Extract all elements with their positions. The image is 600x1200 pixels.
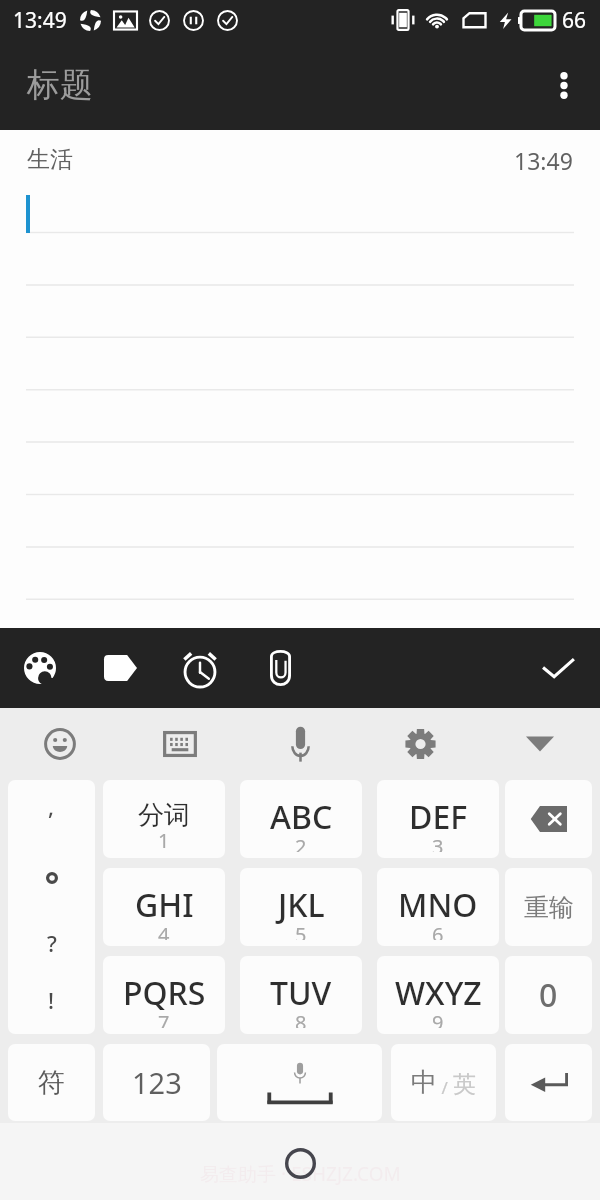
button[interactable]: Tag xyxy=(80,628,160,708)
staticText: ABC xyxy=(270,795,333,839)
button[interactable]: GHI xyxy=(103,868,225,946)
staticText: 符 xyxy=(38,1066,65,1100)
staticText: DEF xyxy=(409,795,468,839)
staticText: 分词 xyxy=(138,799,190,832)
button[interactable]: 0 xyxy=(505,956,592,1034)
button[interactable]: Enter xyxy=(505,1044,592,1121)
button[interactable]: Space xyxy=(217,1044,382,1121)
button[interactable]: 中/英 xyxy=(391,1044,496,1121)
staticText: PQRS xyxy=(123,971,206,1015)
staticText: 0 xyxy=(539,973,558,1017)
staticText: 生活 xyxy=(27,145,73,174)
button[interactable]: More options xyxy=(527,40,600,130)
staticText: 1 xyxy=(158,827,170,854)
staticText: JKL xyxy=(278,883,325,927)
staticText: MNO xyxy=(398,883,478,927)
staticText: 4 xyxy=(158,921,170,940)
button[interactable]: Keyboard layout xyxy=(120,708,240,780)
button[interactable]: Home xyxy=(276,1139,324,1187)
button[interactable]: Punctuation xyxy=(8,780,95,1034)
staticText: 9 xyxy=(432,1009,444,1028)
staticText: TUV xyxy=(270,971,332,1015)
button[interactable]: PQRS xyxy=(103,956,225,1034)
staticText: 英 xyxy=(453,1070,476,1099)
staticText: , xyxy=(48,791,55,821)
staticText: ! xyxy=(48,985,55,1015)
staticText: 8 xyxy=(295,1009,307,1028)
staticText: 6 xyxy=(432,921,444,940)
button[interactable]: 123 xyxy=(103,1044,210,1121)
button[interactable]: Color xyxy=(0,628,80,708)
staticText: ? xyxy=(47,928,57,958)
staticText: 7 xyxy=(158,1009,170,1028)
staticText: 5 xyxy=(295,921,307,940)
button[interactable]: Settings xyxy=(360,708,480,780)
staticText: 13:49 xyxy=(514,145,573,176)
staticText: GHI xyxy=(135,883,194,927)
button[interactable]: Voice input xyxy=(240,708,360,780)
staticText: / xyxy=(437,1076,453,1099)
staticText: 中 xyxy=(411,1066,437,1099)
staticText: WXYZ xyxy=(395,971,482,1015)
button[interactable]: TUV xyxy=(240,956,362,1034)
staticText: 123 xyxy=(132,1063,182,1102)
button[interactable]: WXYZ xyxy=(377,956,499,1034)
button[interactable]: 分词 xyxy=(103,780,225,858)
staticText: 13:49 xyxy=(13,6,67,35)
staticText: 2 xyxy=(295,833,307,852)
staticText: 重输 xyxy=(524,892,574,923)
staticText: 易查助手 · ESHZJZ.COM xyxy=(200,1161,401,1187)
button[interactable]: 重输 xyxy=(505,868,592,946)
button[interactable]: Emoji xyxy=(0,708,120,780)
button[interactable]: Done xyxy=(520,628,600,708)
button[interactable]: Reminder xyxy=(160,628,240,708)
staticText: 3 xyxy=(432,833,444,852)
staticText: 标题 xyxy=(27,64,93,106)
button[interactable]: DEF xyxy=(377,780,499,858)
button[interactable]: 符 xyxy=(8,1044,95,1121)
button[interactable]: ABC xyxy=(240,780,362,858)
button[interactable]: Backspace xyxy=(505,780,592,858)
button[interactable]: Attach xyxy=(240,628,320,708)
staticText: 66 xyxy=(562,6,587,35)
button[interactable]: JKL xyxy=(240,868,362,946)
button[interactable]: MNO xyxy=(377,868,499,946)
button[interactable]: Hide keyboard xyxy=(480,708,600,780)
